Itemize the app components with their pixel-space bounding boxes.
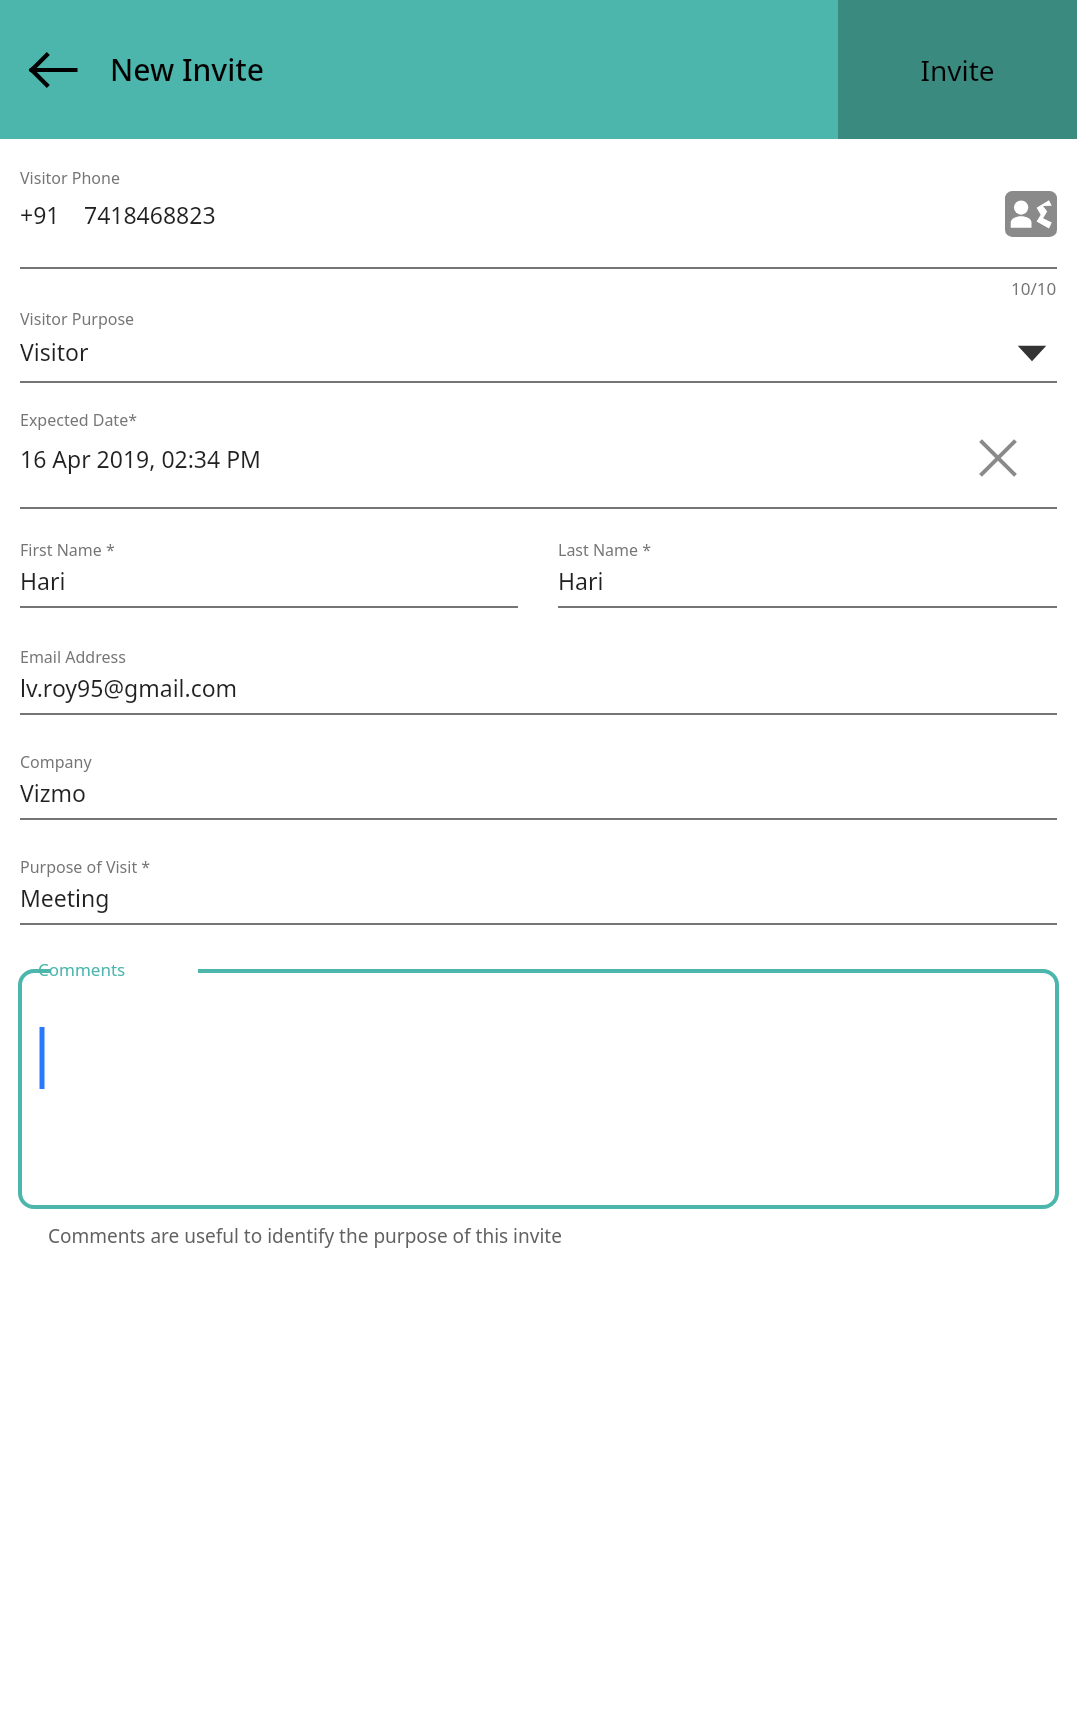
button[interactable]: Pick contact — [1005, 191, 1057, 237]
staticText: Invite — [920, 51, 995, 89]
button[interactable]: Visitor Purpose — [20, 308, 1057, 383]
staticText: lv.roy95@gmail.com — [20, 672, 1057, 703]
button[interactable]: Expected Date* — [20, 409, 1057, 509]
staticText: Email Address — [20, 646, 126, 668]
other: Clear date — [975, 435, 1021, 481]
staticText: First Name * — [20, 539, 115, 561]
staticText: Last Name * — [558, 539, 652, 561]
staticText: 7418468823 — [84, 199, 1005, 230]
staticText: Visitor — [20, 336, 1015, 367]
staticText: +91 — [20, 199, 60, 230]
staticText: Hari — [558, 565, 1057, 596]
button[interactable]: Open dropdown — [1015, 341, 1049, 363]
staticText: Visitor Purpose — [20, 308, 135, 330]
other: Pick contact — [1005, 191, 1057, 237]
staticText: Company — [20, 751, 92, 773]
staticText: 10/10 — [1011, 277, 1057, 300]
staticText: Purpose of Visit * — [20, 856, 151, 878]
button[interactable]: Company — [20, 751, 1057, 820]
button[interactable]: Visitor Phone — [20, 167, 1057, 269]
button[interactable]: Purpose of Visit * — [20, 856, 1057, 925]
button[interactable]: Back — [18, 35, 88, 105]
staticText: Comments are useful to identify the purp… — [48, 1223, 562, 1249]
staticText: Comments — [38, 958, 126, 981]
staticText: New Invite — [110, 49, 264, 90]
staticText: 16 Apr 2019, 02:34 PM — [20, 443, 975, 474]
button[interactable]: First Name * — [20, 539, 518, 608]
staticText: Expected Date* — [20, 409, 137, 431]
button[interactable]: Last Name * — [558, 539, 1057, 608]
staticText: Hari — [20, 565, 518, 596]
other: Back — [25, 42, 81, 98]
staticText: Visitor Phone — [20, 167, 120, 189]
button[interactable]: Invite — [838, 0, 1077, 139]
button[interactable]: Clear date — [975, 435, 1021, 481]
button[interactable]: Email Address — [20, 646, 1057, 715]
staticText: Meeting — [20, 882, 1057, 913]
button[interactable]: Comments — [20, 957, 1057, 1207]
other: Open dropdown — [1015, 341, 1049, 363]
staticText: Vizmo — [20, 777, 1057, 808]
